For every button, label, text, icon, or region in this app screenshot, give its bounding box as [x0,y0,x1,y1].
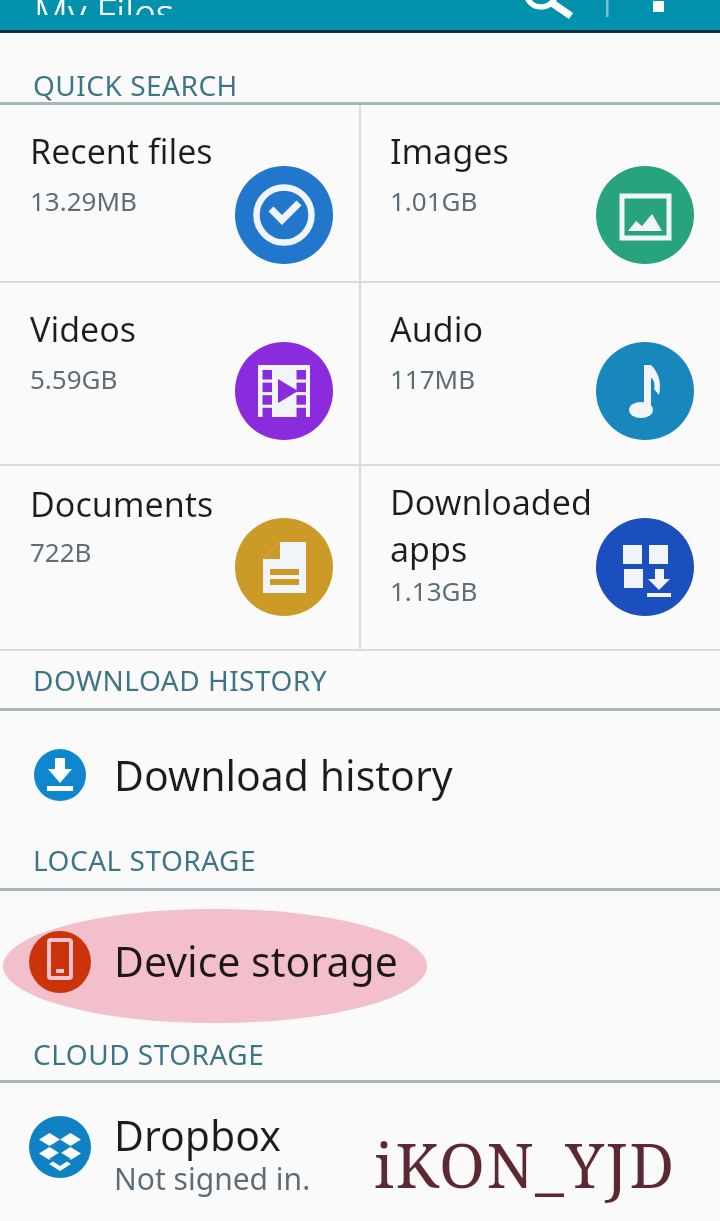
button[interactable] [0,1083,720,1221]
staticText: 1.01GB [390,183,478,218]
staticText: QUICK SEARCH [33,66,238,104]
staticText: Recent files [30,128,213,174]
staticText: 117MB [390,361,476,396]
staticText: 722B [30,534,92,569]
staticText: Download history [114,747,453,803]
staticText: 1.13GB [390,573,478,608]
button[interactable] [0,283,359,464]
staticText: Documents [30,481,214,527]
staticText: Not signed in. [114,1158,311,1199]
button[interactable] [361,283,720,464]
button[interactable] [0,105,359,281]
button[interactable] [361,105,720,281]
staticText: DOWNLOAD HISTORY [33,661,328,699]
staticText: Dropbox [114,1107,281,1163]
staticText: Images [390,128,509,174]
button[interactable]: My Files [0,0,720,30]
staticText: Device storage [114,933,398,989]
staticText: Downloaded apps [390,479,610,572]
staticText: iKON_YJD [374,1122,676,1206]
staticText: 5.59GB [30,361,118,396]
button[interactable] [0,711,720,839]
staticText: Audio [390,306,483,352]
staticText: My Files [34,0,175,15]
staticText: 13.29MB [30,183,137,218]
staticText: LOCAL STORAGE [33,841,256,879]
button[interactable] [0,466,359,649]
staticText: CLOUD STORAGE [33,1035,265,1073]
button[interactable] [0,891,720,1033]
staticText: Videos [30,306,137,352]
button[interactable] [361,466,720,649]
